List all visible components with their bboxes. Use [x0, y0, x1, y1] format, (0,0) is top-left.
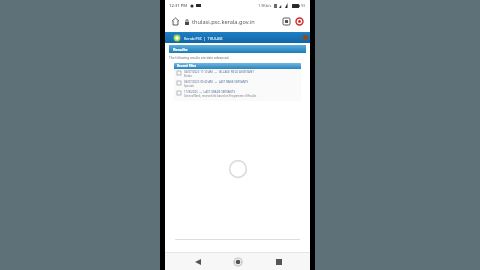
staticText: General Rank, reserved list based on Pro… — [184, 94, 257, 98]
button[interactable]: 04/07/2023 11:10 AM — VILLAGE FIELD ASSI… — [174, 69, 301, 79]
staticText: 1.9Kb/s — [258, 3, 272, 8]
staticText: Kerala PSC | THULASI — [184, 36, 223, 41]
staticText: 12:31 PM — [169, 3, 188, 9]
button[interactable]: Home — [229, 253, 246, 270]
button[interactable]: 04/07/2023 09:40 AM — LAST RANK SERVANTS — [174, 79, 301, 89]
button[interactable]: Tabs — [281, 16, 292, 27]
staticText: 93 — [301, 3, 306, 8]
staticText: 04/07/2023 11:10 AM — VILLAGE FIELD ASSI… — [184, 70, 254, 74]
staticText: Specials — [184, 84, 194, 88]
button[interactable]: Results — [169, 45, 306, 53]
button[interactable]: Kerala PSC | THULASI — [165, 32, 310, 43]
staticText: thulasi.psc.kerala.gov.in — [192, 18, 255, 26]
button[interactable]: Recent apps — [270, 253, 287, 270]
button[interactable]: Record — [294, 16, 305, 27]
staticText: Kerala — [184, 74, 192, 78]
button[interactable]: Back — [189, 253, 206, 270]
staticText: Results — [173, 47, 188, 52]
staticText: Recent Files — [177, 64, 196, 68]
button[interactable]: 11/8/2023 — LAST GRADE SERVANTS — [174, 89, 301, 99]
button[interactable]: thulasi.psc.kerala.gov.in — [185, 18, 277, 26]
button[interactable]: Home — [170, 16, 181, 27]
staticText: 04/07/2023 09:40 AM — LAST RANK SERVANTS — [184, 80, 249, 84]
staticText: The following results are date advanced. — [169, 56, 230, 60]
staticText: 11/8/2023 — LAST GRADE SERVANTS — [184, 90, 235, 94]
